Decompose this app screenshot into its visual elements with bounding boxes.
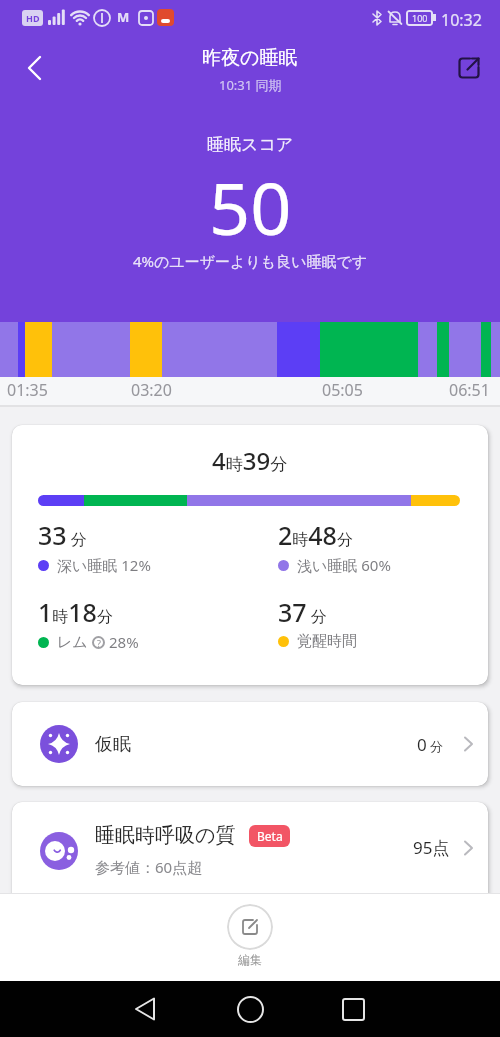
button[interactable] (227, 904, 273, 950)
staticText: M (117, 8, 130, 26)
button[interactable] (328, 981, 378, 1037)
staticText: ? (97, 637, 101, 649)
staticText: 覚醒時間 (297, 632, 357, 651)
staticText: 28% (109, 632, 139, 652)
staticText: 50 (209, 158, 292, 256)
staticText: 03:20 (131, 379, 172, 401)
staticText: 編集 (238, 952, 262, 967)
button[interactable]: 睡眠時呼吸の質 (12, 802, 488, 893)
staticText: HD (26, 12, 40, 24)
staticText: 06:51 (449, 379, 490, 401)
staticText: 2時48分 (278, 518, 353, 552)
staticText: 仮眠 (95, 733, 131, 756)
staticText: 参考値：60点超 (95, 857, 203, 877)
staticText: Beta (257, 828, 283, 844)
button[interactable] (121, 981, 171, 1037)
staticText: 95点 (413, 836, 450, 859)
staticText: 100 (412, 12, 428, 24)
staticText: 0 分 (417, 733, 444, 756)
staticText: 4時39分 (212, 444, 288, 476)
staticText: 睡眠スコア (207, 134, 294, 155)
staticText: 10:32 (441, 9, 482, 31)
staticText: 33 分 (38, 518, 87, 552)
button[interactable] (225, 981, 275, 1037)
staticText: 深い睡眠 12% (57, 555, 151, 575)
staticText: 昨夜の睡眠 (202, 46, 298, 70)
button[interactable] (16, 48, 56, 88)
staticText: 05:05 (322, 379, 363, 401)
button[interactable] (448, 48, 490, 88)
staticText: 浅い睡眠 60% (297, 555, 391, 575)
staticText: 37 分 (278, 595, 327, 629)
staticText: 睡眠時呼吸の質 (95, 823, 236, 848)
staticText: 4%のユーザーよりも良い睡眠です (133, 251, 368, 271)
staticText: 10:31 同期 (219, 76, 282, 94)
staticText: レム (57, 633, 88, 652)
staticText: 1時18分 (38, 595, 113, 629)
button[interactable]: 仮眠 (12, 702, 488, 786)
staticText: 01:35 (7, 379, 48, 401)
